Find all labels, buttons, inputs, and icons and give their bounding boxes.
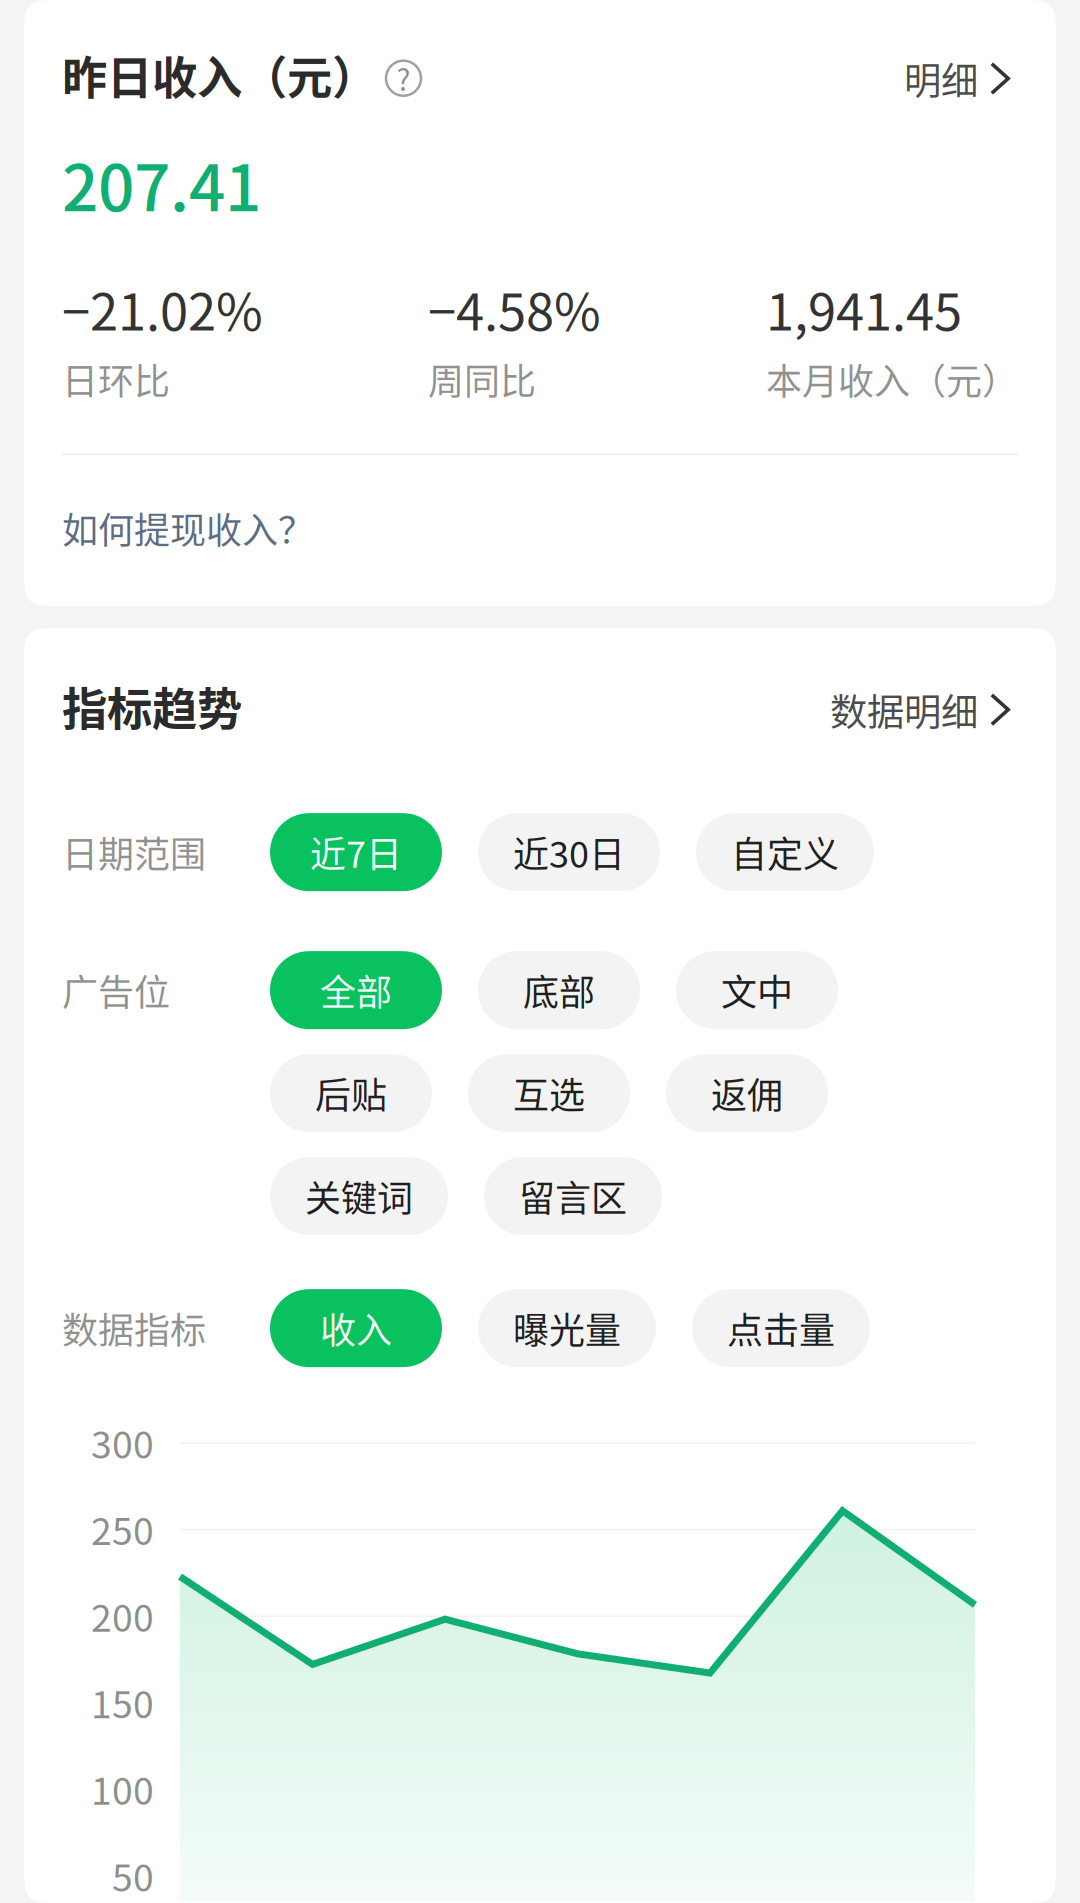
staticText: 昨日收入（元）: [62, 42, 377, 108]
staticText: 日环比: [62, 353, 170, 405]
staticText: 本月收入（元）: [766, 353, 1018, 405]
button[interactable]: 关键词: [270, 1157, 448, 1235]
staticText: 200: [91, 1588, 154, 1642]
staticText: 后贴: [315, 1067, 387, 1119]
button[interactable]: 曝光量: [478, 1289, 656, 1367]
staticText: −21.02%: [62, 272, 263, 345]
staticText: 日期范围: [62, 826, 206, 878]
staticText: 全部: [320, 964, 392, 1016]
staticText: 如何提现收入？: [62, 502, 314, 554]
staticText: 1,941.45: [766, 272, 962, 345]
staticText: 留言区: [519, 1170, 627, 1222]
button[interactable]: 收入: [270, 1289, 442, 1367]
button[interactable]: 全部: [270, 951, 442, 1029]
staticText: 周同比: [428, 353, 536, 405]
button[interactable]: 收入说明: [386, 61, 421, 96]
staticText: 明细: [904, 51, 978, 106]
staticText: 数据指标: [62, 1302, 206, 1354]
staticText: 50: [112, 1848, 154, 1902]
button[interactable]: 明细: [904, 51, 1018, 106]
button[interactable]: 自定义: [696, 813, 874, 891]
staticText: 返佣: [711, 1067, 783, 1119]
button[interactable]: 文中: [676, 951, 838, 1029]
staticText: 207.41: [62, 137, 261, 230]
staticText: 150: [91, 1675, 154, 1729]
staticText: 指标趋势: [62, 673, 242, 739]
staticText: 收入: [320, 1302, 392, 1354]
button[interactable]: 近30日: [478, 813, 660, 891]
staticText: 250: [91, 1502, 154, 1556]
button[interactable]: 后贴: [270, 1054, 432, 1132]
staticText: 300: [91, 1415, 154, 1469]
staticText: 近7日: [310, 826, 402, 878]
staticText: 100: [91, 1761, 154, 1816]
staticText: 互选: [513, 1067, 585, 1119]
staticText: −4.58%: [428, 272, 601, 345]
staticText: 广告位: [62, 964, 170, 1016]
staticText: ?: [396, 57, 410, 99]
button[interactable]: 底部: [478, 951, 640, 1029]
staticText: 自定义: [731, 826, 839, 878]
staticText: 近30日: [513, 826, 625, 878]
staticText: 底部: [523, 964, 595, 1016]
button[interactable]: 返佣: [666, 1054, 828, 1132]
staticText: 关键词: [305, 1170, 413, 1222]
button[interactable]: 近7日: [270, 813, 442, 891]
button[interactable]: 留言区: [484, 1157, 662, 1235]
button[interactable]: 如何提现收入？: [62, 455, 314, 578]
staticText: 点击量: [727, 1302, 835, 1354]
button[interactable]: 点击量: [692, 1289, 870, 1367]
staticText: 数据明细: [830, 683, 978, 737]
staticText: 曝光量: [513, 1302, 621, 1354]
button[interactable]: 互选: [468, 1054, 630, 1132]
staticText: 文中: [721, 964, 793, 1016]
button[interactable]: 数据明细: [830, 683, 1018, 737]
